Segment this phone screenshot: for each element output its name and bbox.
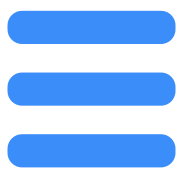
button[interactable]: Menu	[0, 0, 183, 167]
